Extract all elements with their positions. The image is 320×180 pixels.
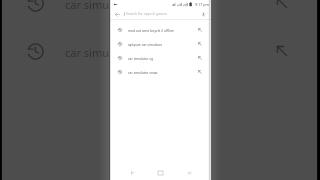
button[interactable]: apkpure car simulator	[110, 37, 211, 51]
staticText: Search for apps & games	[126, 11, 168, 16]
button[interactable]: Voice search	[199, 10, 207, 18]
button[interactable]: Back	[183, 166, 196, 179]
staticText: apkpure car simulator	[128, 42, 196, 46]
button[interactable]: car simulator sg	[110, 51, 211, 65]
button[interactable]: Recents	[126, 166, 139, 179]
button[interactable]: Home	[154, 166, 167, 179]
staticText: car simulat	[65, 45, 123, 60]
button[interactable]: car simulator snow	[110, 65, 211, 79]
button[interactable]: Back	[113, 10, 121, 18]
staticText: car simulat	[65, 0, 123, 12]
staticText: car simulator snow	[128, 70, 196, 74]
staticText: car simulator sg	[128, 56, 196, 60]
staticText: 9:17 pm	[195, 2, 209, 7]
staticText: mad out west bicycle 2 offline	[128, 28, 196, 32]
button[interactable]: mad out west bicycle 2 offline	[110, 23, 211, 37]
